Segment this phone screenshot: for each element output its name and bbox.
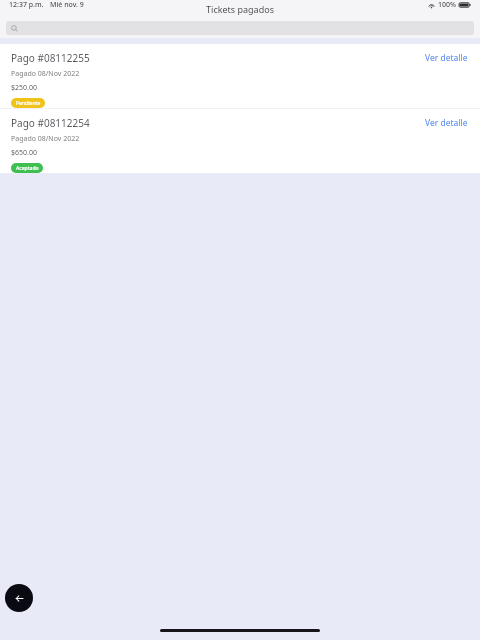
- staticText: Tickets pagados: [206, 3, 274, 15]
- button[interactable]: Pago #08112255: [0, 44, 480, 108]
- button[interactable]: Ver detalle: [423, 116, 470, 130]
- staticText: 100%: [438, 0, 456, 10]
- staticText: $650.00: [11, 148, 37, 158]
- staticText: Pendiente: [16, 100, 41, 107]
- button[interactable]: Pago #08112254: [0, 109, 480, 173]
- staticText: $250.00: [11, 83, 37, 93]
- staticText: Pagado 08/Nov 2022: [11, 69, 80, 79]
- staticText: Pago #08112254: [11, 116, 90, 130]
- staticText: Ver detalle: [425, 117, 468, 129]
- staticText: Ver detalle: [425, 52, 468, 64]
- staticText: 12:37 p.m.: [9, 0, 44, 10]
- button[interactable]: Back: [5, 584, 33, 612]
- staticText: Aceptado: [16, 165, 39, 172]
- staticText: Mié nov. 9: [50, 0, 84, 10]
- staticText: Pago #08112255: [11, 51, 90, 65]
- staticText: Pagado 08/Nov 2022: [11, 134, 80, 144]
- button[interactable]: Ver detalle: [423, 51, 470, 65]
